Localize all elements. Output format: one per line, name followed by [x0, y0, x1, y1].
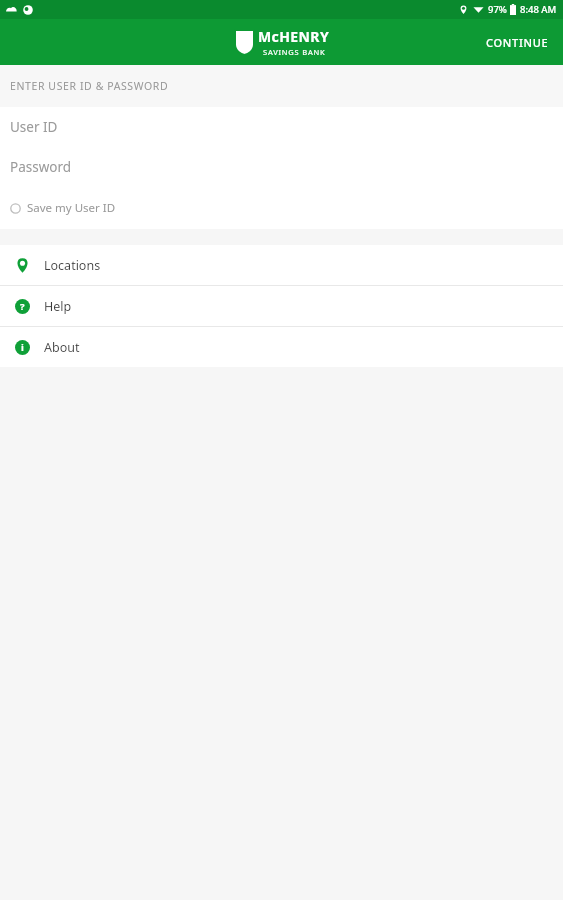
button[interactable]: Password: [0, 147, 563, 187]
button[interactable]: CONTINUE: [472, 25, 563, 60]
staticText: Password: [10, 158, 72, 176]
button[interactable]: Save my User ID: [0, 187, 563, 229]
staticText: 97%: [488, 3, 507, 16]
staticText: Help: [44, 298, 72, 315]
staticText: ENTER USER ID & PASSWORD: [10, 79, 169, 93]
other: About: [15, 340, 30, 355]
staticText: i: [21, 341, 24, 354]
staticText: CONTINUE: [486, 35, 549, 50]
button[interactable]: User ID: [0, 107, 563, 147]
staticText: User ID: [10, 118, 58, 136]
staticText: Locations: [44, 257, 101, 274]
staticText: SAVINGS BANK: [263, 47, 326, 57]
other: Help: [15, 299, 30, 314]
other: Locations: [15, 258, 30, 273]
staticText: Save my User ID: [27, 200, 116, 216]
button[interactable]: Locations: [0, 245, 563, 285]
staticText: 8:48 AM: [520, 3, 557, 16]
staticText: McHENRY: [258, 27, 330, 46]
button[interactable]: About: [0, 327, 563, 367]
staticText: About: [44, 339, 80, 356]
button[interactable]: Help: [0, 286, 563, 326]
staticText: ?: [20, 300, 25, 313]
